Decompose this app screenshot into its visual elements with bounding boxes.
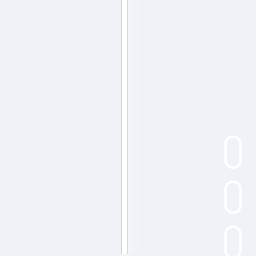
button[interactable]: Control xyxy=(225,182,240,213)
button[interactable]: Control xyxy=(225,137,240,168)
button[interactable]: Control xyxy=(225,227,240,256)
